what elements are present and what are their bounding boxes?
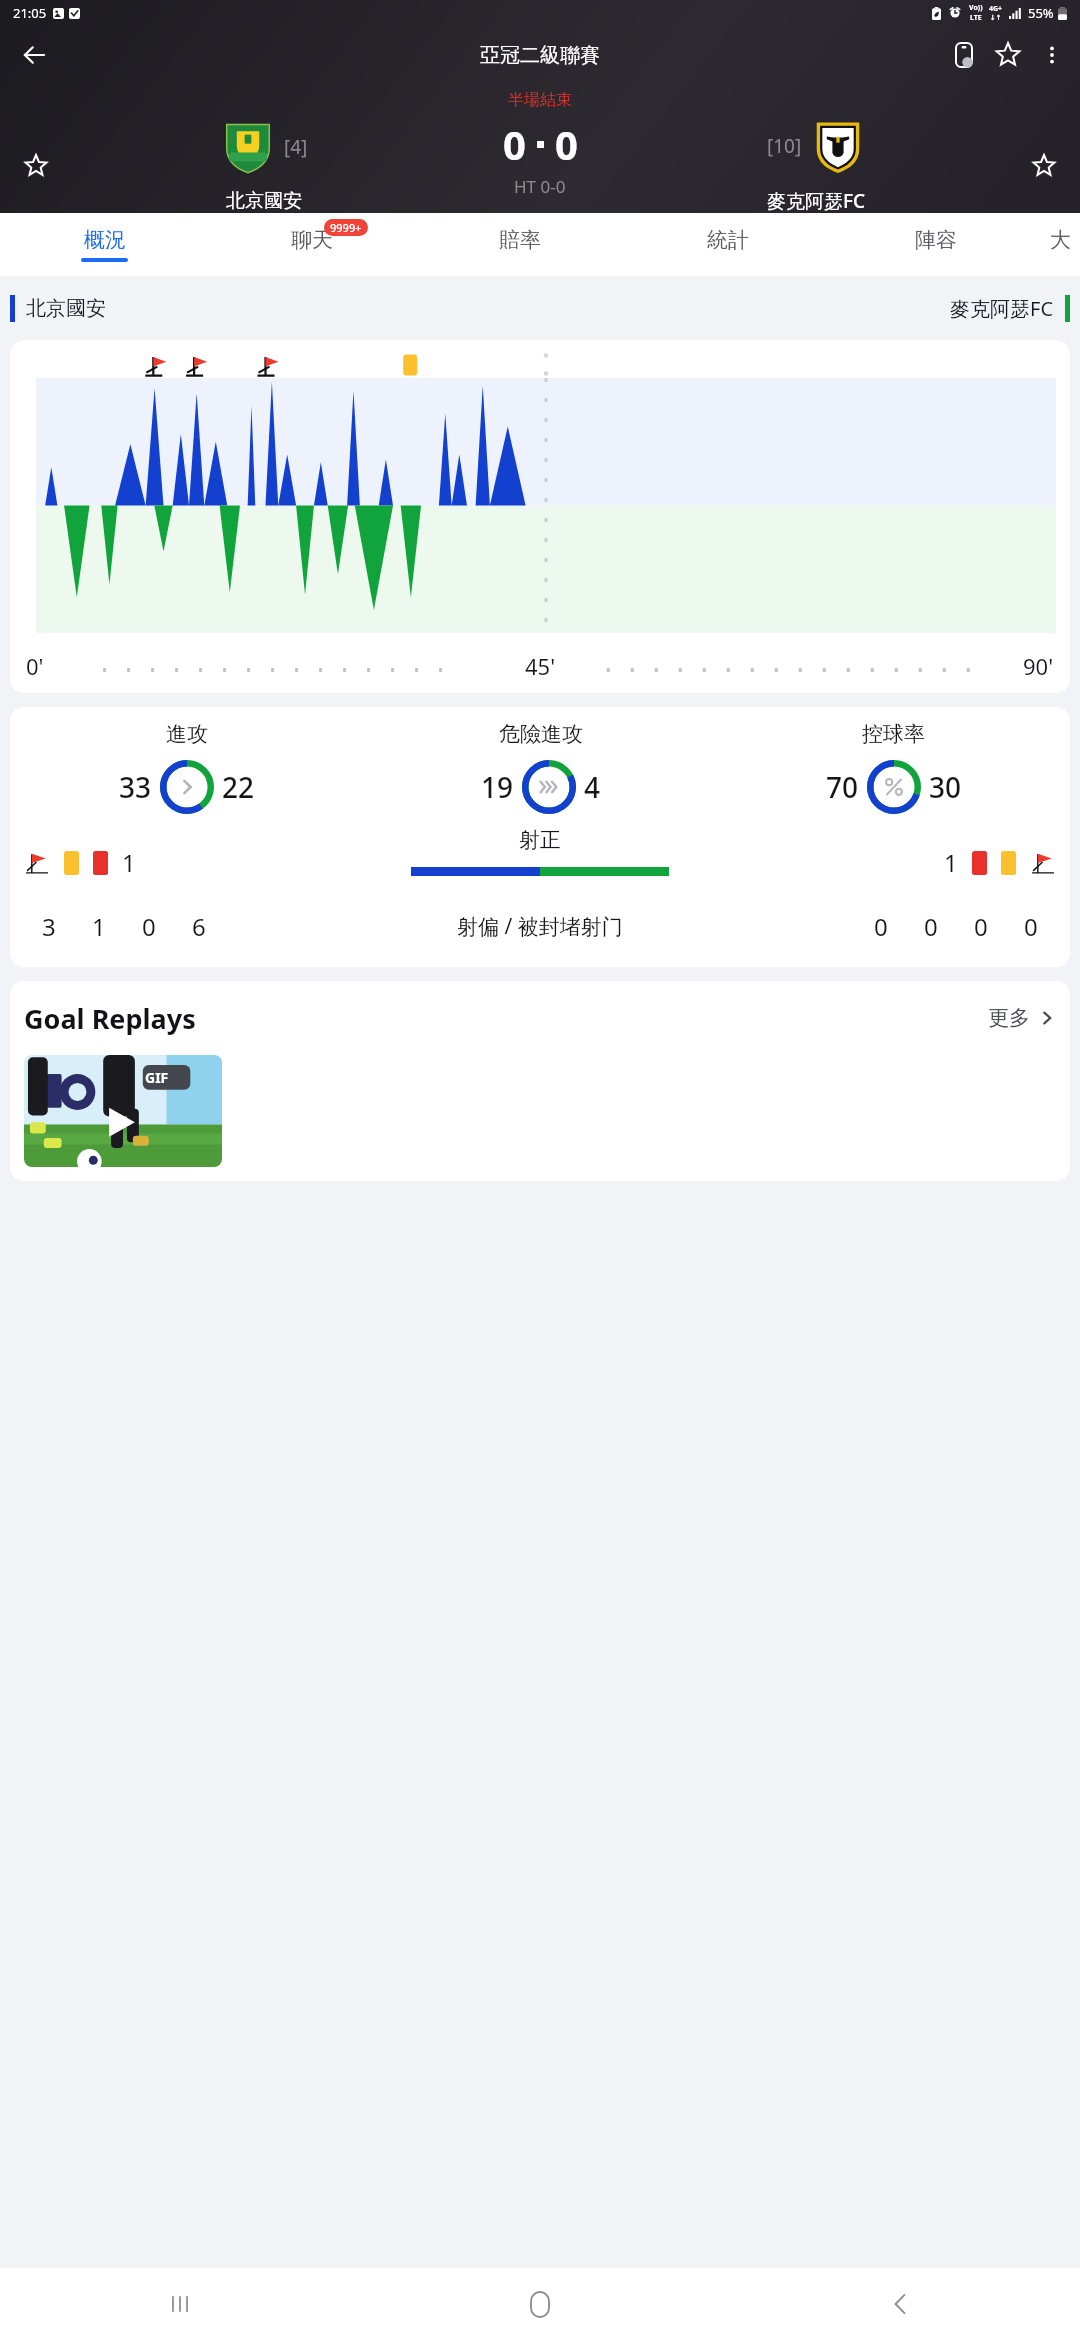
button[interactable]: Favorite [986, 33, 1030, 77]
staticText: 射偏 / 被封堵射门 [457, 912, 623, 941]
staticText: 麥克阿瑟FC [950, 295, 1054, 322]
staticText: 30 [929, 768, 962, 806]
button[interactable]: Back [10, 31, 58, 79]
button[interactable]: 大 [1040, 213, 1080, 276]
staticText: 進攻 [166, 721, 208, 747]
staticText: 北京國安 [26, 296, 106, 321]
staticText: 大 [1050, 227, 1071, 253]
staticText: 0 [503, 117, 526, 171]
staticText: 55% [1028, 4, 1054, 22]
staticText: 0 [974, 910, 988, 943]
staticText: GIF [145, 1068, 169, 1087]
staticText: 45' [525, 651, 556, 681]
staticText: 70 [826, 768, 859, 806]
button[interactable]: Favorite home team [14, 144, 58, 188]
staticText: 3 [42, 910, 56, 943]
staticText: 0 [555, 117, 578, 171]
staticText: 4 [584, 768, 601, 806]
staticText: 控球率 [862, 721, 925, 747]
staticText: 1 [122, 846, 136, 879]
button[interactable]: 概況 [0, 213, 208, 276]
staticText: 19 [481, 768, 514, 806]
staticText: 9999+ [330, 220, 362, 235]
staticText: 4G+ [989, 4, 1003, 14]
staticText: 射正 [519, 827, 561, 853]
staticText: LTE [970, 13, 982, 23]
button[interactable]: Play goal replay [24, 1055, 222, 1167]
staticText: 統計 [707, 227, 749, 253]
staticText: 33 [119, 768, 152, 806]
staticText: 0 [874, 910, 888, 943]
staticText: 0 [924, 910, 938, 943]
button[interactable]: 賠率 [416, 213, 624, 276]
button[interactable]: Recent apps [0, 2268, 360, 2340]
staticText: 22 [222, 768, 255, 806]
staticText: 1 [92, 910, 106, 943]
staticText: [4] [284, 134, 308, 160]
button[interactable]: 聊天 [208, 213, 416, 276]
staticText: [10] [767, 133, 802, 159]
button[interactable]: Home [360, 2268, 720, 2340]
staticText: 6 [192, 910, 206, 943]
staticText: 0' [26, 651, 44, 681]
staticText: 0 [142, 910, 156, 943]
button[interactable]: 0' [10, 340, 1070, 693]
staticText: ↓↑ [990, 14, 1002, 22]
button[interactable]: 陣容 [832, 213, 1040, 276]
staticText: 陣容 [915, 227, 957, 253]
staticText: Goal Replays [24, 1000, 196, 1037]
staticText: 危險進攻 [499, 721, 583, 747]
button[interactable]: Goal Replays [10, 981, 1070, 1055]
staticText: 更多 [988, 1005, 1030, 1031]
button[interactable]: 統計 [624, 213, 832, 276]
staticText: 北京國安 [226, 189, 302, 213]
button[interactable]: 進攻 [10, 707, 1070, 967]
button[interactable]: Cast to device [942, 33, 986, 77]
staticText: 0 [1024, 910, 1038, 943]
staticText: 1 [944, 846, 958, 879]
staticText: 聊天 [291, 227, 333, 253]
staticText: 賠率 [499, 227, 541, 253]
staticText: HT 0-0 [514, 175, 566, 198]
staticText: 概況 [84, 227, 126, 253]
staticText: Vo)) [969, 3, 983, 13]
staticText: 麥克阿瑟FC [767, 188, 866, 213]
staticText: 半場結束 [508, 90, 572, 110]
button[interactable]: Favorite away team [1022, 144, 1066, 188]
button[interactable]: More options [1030, 33, 1074, 77]
staticText: 21:05 [13, 4, 47, 22]
button[interactable]: Back [720, 2268, 1080, 2340]
staticText: 亞冠二級聯賽 [480, 43, 600, 68]
staticText: 90' [1023, 651, 1054, 681]
